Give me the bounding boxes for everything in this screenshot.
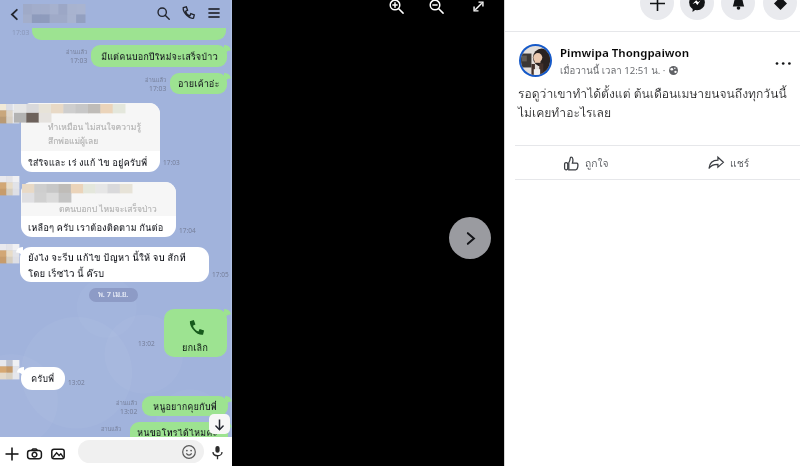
staticText: ทำเหมือน ไม่สนใจความรู้ (48, 120, 142, 134)
button[interactable]: More options (771, 51, 795, 75)
staticText: หนขอโทรได้ไหมคะ (137, 425, 218, 437)
button[interactable]: Zoom out (423, 0, 449, 19)
button[interactable]: Scroll to bottom (209, 414, 230, 434)
button[interactable]: Voice message (206, 441, 228, 463)
button[interactable]: Add (0, 442, 24, 466)
staticText: อายเค้าอ่ะ (178, 76, 220, 91)
button[interactable]: มีแต่คนบอกปีใหม่จะเสร็จป่าว (91, 45, 227, 67)
staticText: 17:03 (149, 84, 167, 93)
button[interactable]: ทำเหมือน ไม่สนใจความรู้ (21, 103, 160, 172)
button[interactable]: อายเค้าอ่ะ (170, 73, 227, 94)
button[interactable]: Messenger (680, 0, 714, 20)
button[interactable]: Next image (449, 217, 491, 259)
staticText: อ่านแล้ว (116, 398, 138, 407)
button[interactable]: ตคนบอกป ไหมจะเสร็จป่าว (21, 182, 176, 237)
staticText: 13:02 (120, 407, 138, 416)
button[interactable]: Gallery (46, 442, 70, 466)
staticText: 17:04 (179, 226, 196, 235)
staticText: 17:03 (12, 28, 30, 37)
staticText: ถูกใจ (585, 155, 609, 171)
button[interactable]: แชร์ (657, 147, 800, 179)
button[interactable]: Emoji (178, 441, 200, 463)
button[interactable]: Zoom in (383, 0, 409, 19)
staticText: อ่านแล้ว (101, 425, 122, 434)
button[interactable]: Cancelled call (164, 309, 227, 357)
staticText: 17:03 (163, 158, 180, 167)
button[interactable]: Expand (465, 0, 491, 19)
button[interactable]: ครับพี่ (21, 367, 65, 390)
button[interactable]: หนขอโทรได้ไหมคะ (130, 422, 228, 437)
staticText: ใส่ใจและ เร่ งแก้ ไข อยู่ครับพี่ (28, 155, 148, 170)
button[interactable]: Camera (22, 442, 46, 466)
button[interactable]: Search (150, 0, 176, 26)
staticText: 13:02 (138, 339, 155, 348)
staticText: รอดูว่าเขาทำได้ตั้งแต่ ต้นเดือนเมษายนจนถ… (518, 84, 787, 103)
staticText: ยังไง จะรีบ แก้ไข ปัญหา นี้ให้ จบ สักที (28, 250, 186, 266)
staticText: ไม่เคยทำอะไรเลย (518, 103, 612, 122)
staticText: เมื่อวานนี้ เวลา 12:51 น. · (560, 63, 666, 78)
button[interactable]: Create (640, 0, 674, 20)
button[interactable]: Menu (201, 0, 227, 26)
button[interactable]: Menu (763, 0, 797, 20)
button[interactable]: Profile photo (519, 44, 552, 77)
staticText: ยกเลิก (182, 340, 209, 355)
button[interactable]: Call (175, 0, 201, 26)
button[interactable] (32, 28, 226, 40)
button[interactable] (78, 440, 204, 463)
button[interactable]: Back (1, 1, 27, 27)
staticText: 13:02 (68, 378, 85, 387)
button[interactable]: Notifications (721, 0, 755, 20)
staticText: โดย เร็ซไว นี้ ค๊รบ (28, 266, 105, 282)
button[interactable]: หนูอยากคุยกับพี่ (142, 396, 228, 416)
staticText: พ. 7 เม.ย. (98, 289, 129, 301)
staticText: มีแต่คนบอกปีใหม่จะเสร็จป่าว (101, 49, 218, 64)
staticText: ครับพี่ (31, 371, 55, 386)
staticText: Pimwipa Thongpaiwon (560, 45, 690, 61)
button[interactable]: ยังไง จะรีบ แก้ไข ปัญหา นี้ให้ จบ สักที (20, 247, 209, 282)
staticText: อ่านแล้ว (145, 75, 167, 84)
staticText: 17:03 (70, 56, 88, 65)
staticText: เหลือๆ ครับ เราต้องติดตาม กันต่อ (28, 220, 164, 235)
staticText: สึกพ่อแม่ผู้เลย (48, 134, 99, 148)
staticText: อ่านแล้ว (66, 47, 88, 56)
staticText: แชร์ (730, 155, 750, 171)
staticText: 17:05 (212, 270, 229, 279)
staticText: หนูอยากคุยกับพี่ (153, 399, 217, 414)
staticText: ตคนบอกป ไหมจะเสร็จป่าว (59, 202, 157, 216)
button[interactable]: ถูกใจ (515, 147, 657, 179)
